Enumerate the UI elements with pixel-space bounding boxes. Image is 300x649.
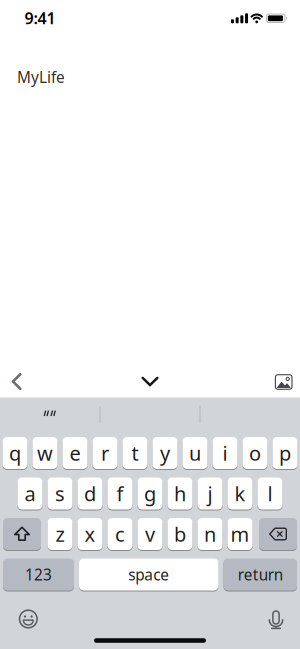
- button[interactable]: z: [47, 518, 72, 550]
- staticText: x: [84, 520, 95, 548]
- staticText: 123: [25, 564, 52, 585]
- staticText: r: [101, 439, 109, 467]
- staticText: e: [69, 439, 80, 467]
- staticText: d: [84, 480, 96, 507]
- button[interactable]: y: [152, 437, 177, 469]
- button[interactable]: d: [77, 477, 102, 509]
- button[interactable]: b: [167, 518, 192, 550]
- staticText: b: [174, 520, 186, 548]
- button[interactable]: j: [197, 477, 222, 509]
- staticText: o: [249, 439, 261, 467]
- button[interactable]: g: [137, 477, 162, 509]
- button[interactable]: k: [227, 477, 252, 509]
- button[interactable]: m: [227, 518, 252, 550]
- button[interactable]: t: [122, 437, 147, 469]
- staticText: l: [267, 480, 272, 507]
- staticText: t: [131, 439, 138, 467]
- button[interactable]: n: [197, 518, 222, 550]
- button[interactable]: Shift: [3, 518, 41, 550]
- staticText: y: [160, 439, 170, 467]
- staticText: k: [234, 480, 245, 507]
- button[interactable]: u: [182, 437, 207, 469]
- staticText: n: [204, 520, 216, 548]
- staticText: c: [115, 520, 125, 548]
- button[interactable]: o: [242, 437, 267, 469]
- button[interactable]: x: [77, 518, 102, 550]
- button[interactable]: Dictation: [261, 605, 291, 635]
- staticText: w: [37, 439, 53, 467]
- button[interactable]: space: [79, 558, 218, 590]
- button[interactable]: f: [107, 477, 132, 509]
- staticText: q: [9, 439, 21, 467]
- button[interactable]: i: [212, 437, 237, 469]
- staticText: g: [144, 480, 156, 507]
- staticText: s: [55, 480, 65, 507]
- staticText: p: [279, 439, 291, 467]
- staticText: i: [222, 439, 227, 467]
- button[interactable]: q: [2, 437, 27, 469]
- button[interactable]: 123: [3, 558, 74, 590]
- button[interactable]: c: [107, 518, 132, 550]
- button[interactable]: r: [92, 437, 117, 469]
- button[interactable]: l: [257, 477, 282, 509]
- button[interactable]: Back: [1, 366, 31, 396]
- button[interactable]: e: [62, 437, 87, 469]
- button[interactable]: h: [167, 477, 192, 509]
- staticText: space: [128, 564, 169, 585]
- button[interactable]: Insert photo: [269, 367, 299, 397]
- button[interactable]: return: [223, 558, 297, 590]
- staticText: v: [145, 520, 155, 548]
- staticText: MyLife: [17, 66, 65, 87]
- button[interactable]: w: [32, 437, 57, 469]
- button[interactable]: a: [17, 477, 42, 509]
- button[interactable]: p: [272, 437, 297, 469]
- staticText: m: [230, 520, 249, 548]
- button[interactable]: s: [47, 477, 72, 509]
- staticText: f: [116, 480, 123, 507]
- button[interactable]: Delete: [259, 518, 297, 550]
- staticText: z: [55, 520, 64, 548]
- staticText: u: [189, 439, 201, 467]
- button[interactable]: Dismiss keyboard: [133, 366, 167, 396]
- staticText: return: [238, 564, 283, 585]
- button[interactable]: Suggestion: quotation marks: [1, 399, 98, 427]
- staticText: h: [174, 480, 186, 507]
- button[interactable]: Emoji: [13, 604, 43, 634]
- staticText: j: [207, 480, 212, 507]
- staticText: a: [24, 480, 35, 507]
- button[interactable]: v: [137, 518, 162, 550]
- staticText: 9:41: [24, 7, 55, 29]
